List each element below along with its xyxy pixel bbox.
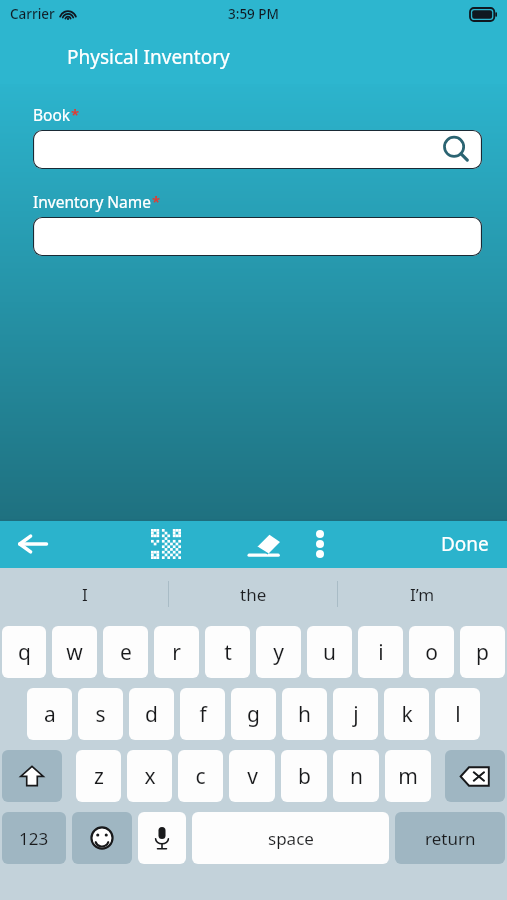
button[interactable]: Shift — [2, 750, 62, 802]
staticText: d — [145, 700, 158, 729]
staticText: space — [268, 827, 314, 850]
staticText: t — [224, 638, 232, 667]
staticText: m — [398, 762, 418, 791]
button[interactable]: Voice input — [138, 812, 186, 864]
button[interactable]: u — [307, 626, 352, 678]
staticText: v — [247, 762, 258, 791]
button[interactable]: d — [129, 688, 174, 740]
button[interactable] — [33, 217, 482, 256]
button[interactable]: y — [256, 626, 301, 678]
staticText: r — [172, 638, 181, 667]
button[interactable]: h — [282, 688, 327, 740]
staticText: j — [353, 700, 359, 729]
button[interactable]: Back — [0, 519, 66, 568]
button[interactable]: m — [385, 750, 431, 802]
button[interactable]: c — [178, 750, 223, 802]
other: Search book — [440, 134, 472, 166]
staticText: p — [476, 638, 489, 667]
staticText: n — [350, 762, 363, 791]
staticText: w — [66, 638, 83, 667]
staticText: e — [120, 638, 132, 667]
staticText: I — [82, 583, 88, 606]
staticText: c — [195, 762, 206, 791]
button[interactable]: x — [127, 750, 172, 802]
staticText: Carrier — [10, 5, 55, 23]
staticText: Done — [441, 531, 489, 557]
staticText: Inventory Name — [33, 191, 152, 212]
staticText: b — [298, 762, 311, 791]
button[interactable]: r — [154, 626, 199, 678]
button[interactable]: g — [231, 688, 276, 740]
button[interactable]: q — [2, 626, 46, 678]
staticText: the — [240, 583, 267, 606]
staticText: I’m — [410, 583, 435, 606]
staticText: 3:59 PM — [228, 5, 279, 23]
button[interactable]: e — [103, 626, 148, 678]
button[interactable]: o — [409, 626, 454, 678]
button[interactable]: More options — [299, 519, 341, 568]
button[interactable]: z — [76, 750, 121, 802]
staticText: Physical Inventory — [67, 44, 230, 70]
button[interactable]: l — [435, 688, 480, 740]
button[interactable]: Erase — [237, 519, 291, 568]
button[interactable]: I’m — [338, 568, 507, 620]
button[interactable]: return — [395, 812, 505, 864]
staticText: x — [144, 762, 156, 791]
button[interactable]: j — [333, 688, 378, 740]
button[interactable]: the — [169, 568, 338, 620]
staticText: o — [425, 638, 438, 667]
button[interactable]: 123 — [2, 812, 66, 864]
button[interactable]: Done — [423, 519, 507, 568]
button[interactable]: a — [27, 688, 72, 740]
button[interactable]: Backspace — [445, 750, 505, 802]
button[interactable]: p — [460, 626, 505, 678]
button[interactable]: space — [192, 812, 389, 864]
staticText: * — [71, 104, 80, 124]
staticText: u — [323, 638, 336, 667]
button[interactable]: t — [205, 626, 250, 678]
button[interactable]: i — [358, 626, 403, 678]
staticText: f — [199, 700, 207, 729]
staticText: z — [94, 762, 104, 791]
button[interactable]: I — [0, 568, 169, 620]
staticText: a — [44, 700, 56, 729]
staticText: h — [298, 700, 311, 729]
staticText: g — [247, 700, 260, 729]
button[interactable]: k — [384, 688, 429, 740]
staticText: l — [455, 700, 461, 729]
button[interactable]: v — [229, 750, 275, 802]
staticText: Book — [33, 104, 71, 125]
staticText: y — [273, 638, 284, 667]
button[interactable]: Emoji — [72, 812, 132, 864]
staticText: q — [18, 638, 31, 667]
button[interactable]: n — [333, 750, 379, 802]
staticText: k — [401, 700, 413, 729]
button[interactable]: f — [180, 688, 225, 740]
button[interactable]: w — [52, 626, 97, 678]
staticText: * — [152, 191, 161, 211]
staticText: i — [378, 638, 384, 667]
button[interactable]: s — [78, 688, 123, 740]
staticText: 123 — [19, 827, 49, 850]
button[interactable]: b — [281, 750, 327, 802]
staticText: return — [425, 827, 476, 850]
button[interactable]: Scan QR code — [140, 519, 192, 568]
button[interactable]: Search book — [33, 130, 482, 169]
staticText: s — [95, 700, 106, 729]
